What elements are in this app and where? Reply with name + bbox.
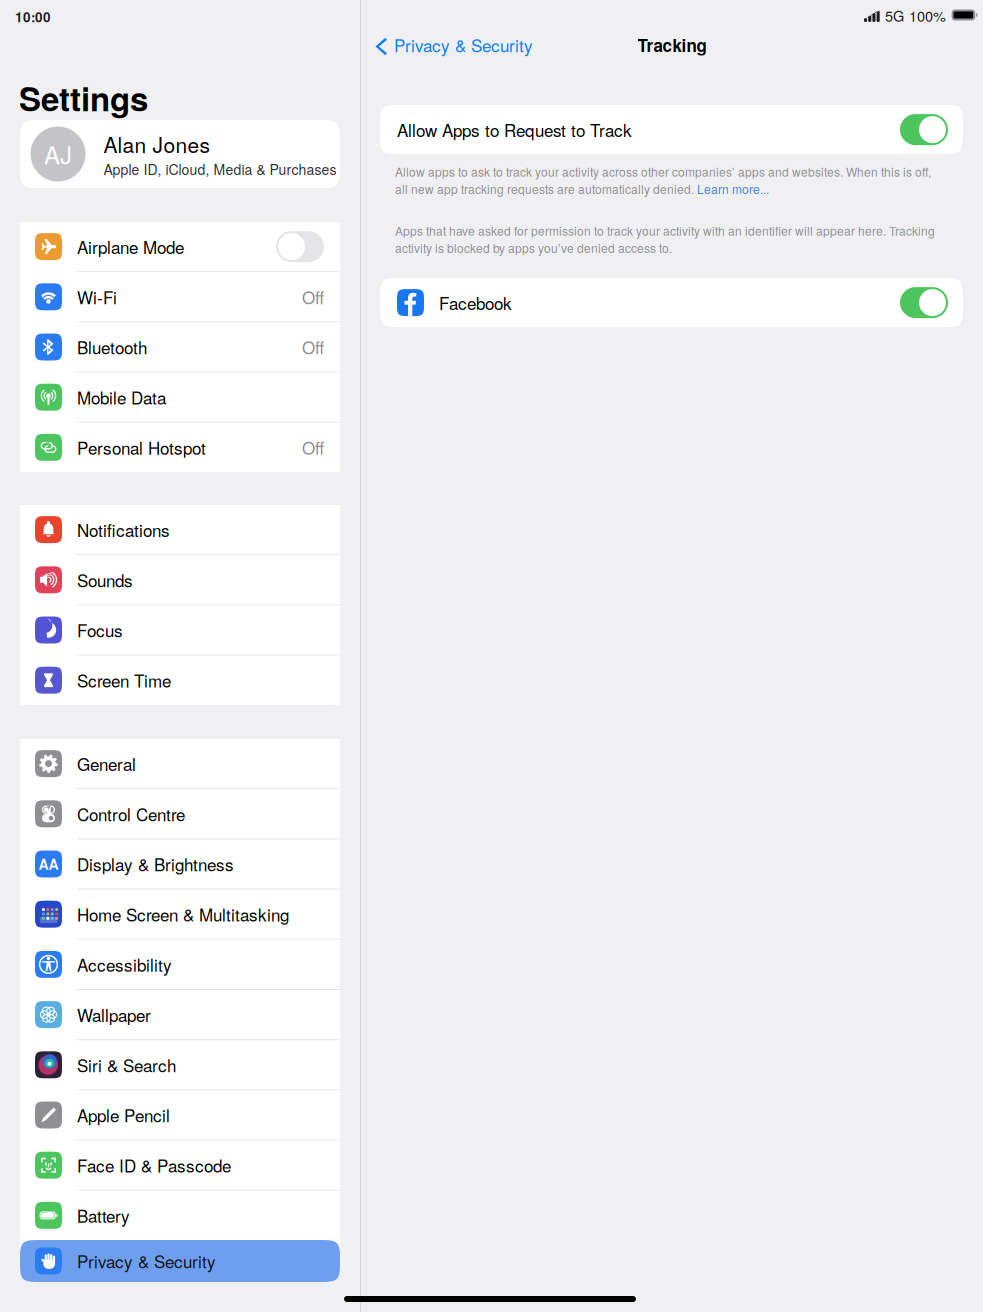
button[interactable]: Mobile Data — [20, 373, 340, 422]
staticText: Airplane Mode — [77, 234, 184, 259]
staticText: Privacy & Security — [394, 33, 533, 57]
button[interactable]: Facebook — [380, 278, 963, 327]
button[interactable]: Allow Apps to Request to Track — [380, 105, 963, 154]
staticText: Screen Time — [77, 668, 171, 692]
button[interactable]: Siri & Search — [20, 1040, 340, 1089]
staticText: 10:00 — [15, 7, 51, 26]
staticText: Wallpaper — [77, 1002, 151, 1027]
staticText: AA — [38, 854, 58, 874]
staticText: AJ — [44, 137, 72, 171]
staticText: 100% — [909, 5, 946, 26]
button[interactable]: Bluetooth — [20, 322, 340, 372]
button[interactable]: Home Screen & Multitasking — [20, 890, 340, 939]
staticText: Apps that have asked for permission to t… — [395, 222, 935, 256]
staticText: Sounds — [77, 568, 133, 592]
button[interactable]: Privacy & Security — [20, 1240, 340, 1282]
staticText: Home Screen & Multitasking — [77, 902, 289, 926]
button[interactable]: Screen Time — [20, 656, 340, 705]
button[interactable]: Battery — [20, 1191, 340, 1240]
button[interactable]: Accessibility — [20, 940, 340, 989]
staticText: Focus — [77, 618, 123, 642]
button[interactable]: Face ID & Passcode — [20, 1141, 340, 1190]
staticText: Off — [302, 285, 324, 309]
button[interactable]: Apple Pencil — [20, 1090, 340, 1140]
button[interactable]: Privacy & Security — [361, 24, 543, 66]
button[interactable]: Personal Hotspot — [20, 423, 340, 472]
button[interactable]: Wallpaper — [20, 990, 340, 1039]
staticText: Apple ID, iCloud, Media & Purchases — [103, 159, 336, 179]
staticText: Facebook — [439, 290, 512, 315]
staticText: Off — [302, 435, 324, 459]
staticText: Bluetooth — [77, 335, 147, 359]
button[interactable]: Sounds — [20, 555, 340, 604]
staticText: Siri & Search — [77, 1053, 176, 1077]
staticText: Apple Pencil — [77, 1103, 170, 1127]
staticText: Allow apps to ask to track your activity… — [395, 163, 931, 197]
staticText: General — [77, 751, 136, 776]
button[interactable]: AJ — [20, 120, 340, 188]
staticText: Off — [302, 335, 324, 359]
staticText: Display & Brightness — [77, 852, 234, 876]
button[interactable]: AA — [20, 839, 340, 889]
staticText: Personal Hotspot — [77, 435, 206, 459]
button[interactable]: General — [20, 739, 340, 788]
staticText: Mobile Data — [77, 385, 166, 409]
button[interactable]: Control Centre — [20, 789, 340, 838]
staticText: Privacy & Security — [77, 1249, 216, 1273]
button[interactable]: Focus — [20, 605, 340, 655]
staticText: Control Centre — [77, 802, 185, 826]
staticText: Face ID & Passcode — [77, 1153, 231, 1177]
staticText: Allow Apps to Request to Track — [397, 117, 632, 142]
staticText: Wi-Fi — [77, 285, 117, 309]
staticText: Notifications — [77, 517, 170, 542]
button[interactable]: Airplane Mode — [20, 222, 340, 271]
staticText: Accessibility — [77, 952, 172, 976]
staticText: Tracking — [637, 33, 706, 57]
button[interactable]: Wi-Fi — [20, 272, 340, 321]
staticText: 5G — [885, 5, 904, 26]
staticText: Settings — [19, 74, 148, 121]
staticText: Battery — [77, 1203, 130, 1227]
staticText: Alan Jones — [103, 129, 210, 159]
button[interactable]: Notifications — [20, 505, 340, 554]
